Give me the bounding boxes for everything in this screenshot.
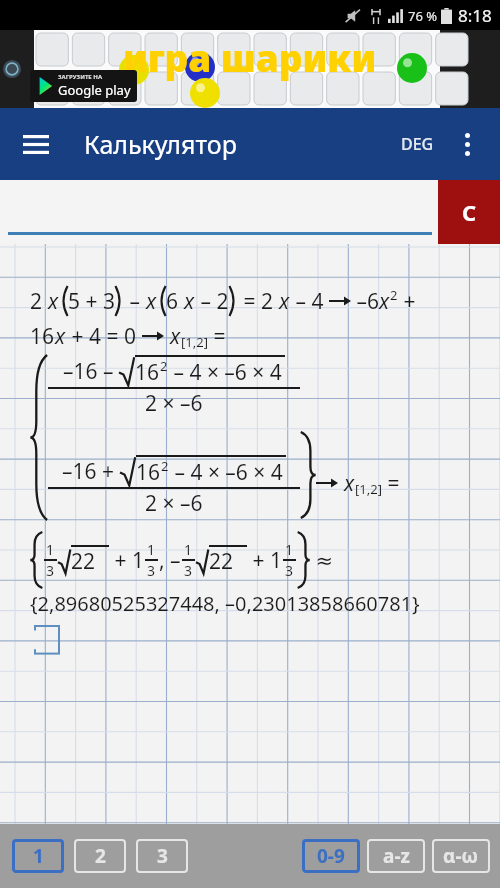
staticText — [164, 322, 170, 351]
staticText: = — [208, 322, 226, 351]
staticText: – 4 — [290, 287, 329, 316]
staticText: – 2 — [195, 287, 229, 316]
staticText: 8:18 — [458, 4, 492, 27]
staticText: x — [55, 322, 66, 351]
staticText: 2 × –6 — [145, 489, 203, 518]
button[interactable]: 3 — [136, 839, 188, 873]
staticText: 16 — [135, 358, 160, 387]
staticText: [1,2] — [181, 333, 208, 351]
button[interactable]: Google Play — [36, 73, 131, 99]
staticText: + 4 = 0 — [66, 322, 142, 351]
staticText: DEG — [401, 133, 434, 155]
staticText: 2 × –6 — [145, 389, 203, 418]
staticText: 1 — [285, 540, 294, 559]
button[interactable]: 0-9 — [302, 839, 360, 873]
staticText: x — [184, 287, 195, 316]
staticText: a-z — [383, 843, 410, 869]
staticText: 16 — [30, 322, 55, 351]
staticText: α-ω — [443, 843, 479, 869]
staticText: {2,89680525327448, –0,23013858660781} — [30, 590, 420, 617]
staticText: C — [462, 197, 477, 227]
staticText: 3 — [46, 561, 55, 580]
staticText: + — [398, 287, 416, 316]
staticText: Google play — [58, 81, 131, 99]
staticText: ЗАГРУЗИТЕ НА — [58, 73, 103, 81]
staticText: 3 — [147, 561, 156, 580]
staticText: – 4 × –6 × 4 — [169, 458, 283, 487]
staticText: 22 — [209, 547, 234, 576]
staticText: –6 — [351, 287, 379, 316]
staticText: 76 % — [408, 7, 438, 25]
staticText: + 1 — [247, 546, 282, 575]
staticText: = 2 — [238, 287, 279, 316]
staticText: 5 + 3 — [68, 287, 115, 316]
staticText: 1 — [33, 843, 44, 869]
staticText: 2 — [30, 287, 48, 316]
button[interactable]: More options — [446, 123, 488, 165]
button[interactable]: 1 — [12, 839, 64, 873]
staticText: = — [382, 469, 400, 498]
staticText: x — [379, 287, 390, 316]
staticText: [1,2] — [355, 480, 382, 498]
staticText: + 1 — [109, 546, 144, 575]
staticText: x — [344, 469, 355, 498]
button[interactable]: DEG — [397, 127, 438, 161]
staticText: 6 — [166, 287, 184, 316]
staticText: 16 — [136, 458, 161, 487]
staticText: 2 — [390, 286, 398, 304]
staticText: 2 — [95, 843, 106, 869]
staticText: 3 — [157, 843, 168, 869]
button[interactable]: Menu — [14, 122, 58, 166]
staticText: 1 — [46, 540, 55, 559]
staticText: x — [279, 287, 290, 316]
staticText: 2 — [160, 357, 168, 375]
staticText: – 4 × –6 × 4 — [168, 358, 282, 387]
staticText: x — [170, 322, 181, 351]
staticText: ≈ — [310, 546, 334, 575]
staticText: 2 — [161, 457, 169, 475]
staticText: – — [124, 287, 146, 316]
staticText: x — [48, 287, 59, 316]
staticText: , – — [159, 546, 181, 575]
staticText: 1 — [184, 540, 193, 559]
staticText: 22 — [71, 547, 96, 576]
staticText: –16 – — [63, 357, 119, 386]
button[interactable]: 2 — [74, 839, 126, 873]
staticText: 3 — [184, 561, 193, 580]
button[interactable]: C — [438, 180, 500, 244]
staticText: 1 — [147, 540, 156, 559]
staticText: x — [146, 287, 157, 316]
staticText: 3 — [285, 561, 294, 580]
staticText: игра шарики — [123, 32, 377, 82]
staticText: –16 + — [62, 457, 120, 486]
button[interactable]: a-z — [367, 839, 425, 873]
button[interactable]: α-ω — [432, 839, 490, 873]
staticText — [338, 469, 344, 498]
staticText: Калькулятор — [84, 127, 237, 161]
staticText: 0-9 — [317, 843, 345, 869]
